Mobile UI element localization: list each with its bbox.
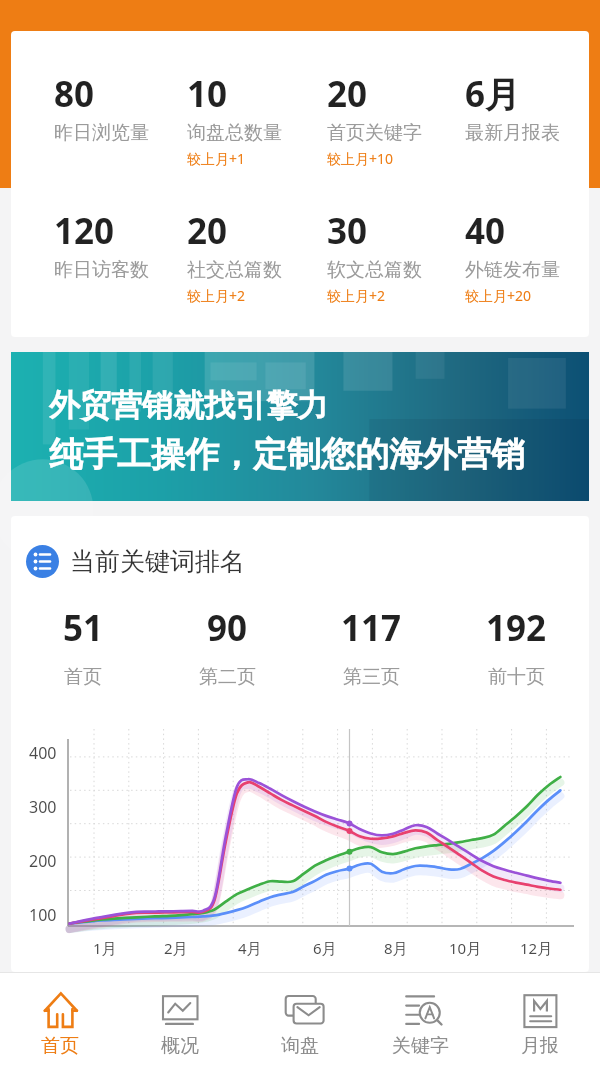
staticText: 关键字 [392, 1034, 449, 1058]
staticText: 40 [465, 207, 506, 255]
staticText: 400 [29, 742, 57, 764]
staticText: 200 [29, 850, 57, 872]
staticText: 昨日浏览量 [54, 121, 149, 145]
staticText: 第二页 [199, 665, 256, 689]
staticText: 6月 [313, 938, 337, 958]
staticText: 10 [187, 70, 228, 118]
staticText: 首页 [64, 665, 102, 689]
staticText: 当前关键词排名 [70, 546, 245, 577]
staticText: 较上月+20 [465, 286, 532, 305]
staticText: 较上月+2 [327, 286, 386, 305]
staticText: 月报 [521, 1034, 559, 1058]
staticText: 20 [327, 70, 368, 118]
staticText: 较上月+2 [187, 286, 246, 305]
staticText: 117 [341, 604, 402, 652]
staticText: 纯手工操作，定制您的海外营销 [49, 433, 525, 476]
staticText: 较上月+10 [327, 149, 394, 168]
button[interactable]: 询盘 [240, 973, 360, 1067]
staticText: 外贸营销就找引擎力 [49, 386, 328, 425]
staticText: 社交总篇数 [187, 258, 282, 282]
staticText: 30 [327, 207, 368, 255]
staticText: 120 [54, 207, 115, 255]
staticText: 192 [486, 604, 547, 652]
staticText: 12月 [520, 938, 553, 958]
staticText: 2月 [164, 938, 188, 958]
staticText: 100 [29, 904, 57, 926]
staticText: 51 [63, 604, 104, 652]
staticText: 20 [187, 207, 228, 255]
staticText: 首页关键字 [327, 121, 422, 145]
button[interactable]: 当前关键词排名 [26, 545, 245, 578]
staticText: 1月 [93, 938, 117, 958]
staticText: 询盘 [281, 1034, 319, 1058]
staticText: 昨日访客数 [54, 258, 149, 282]
staticText: 软文总篇数 [327, 258, 422, 282]
staticText: 询盘总数量 [187, 121, 282, 145]
staticText: 概况 [161, 1034, 199, 1058]
staticText: 第三页 [343, 665, 400, 689]
staticText: 8月 [384, 938, 408, 958]
staticText: 最新月报表 [465, 121, 560, 145]
staticText: 80 [54, 70, 95, 118]
button[interactable]: 关键字 [360, 973, 480, 1067]
staticText: 300 [29, 796, 57, 818]
staticText: 10月 [449, 938, 482, 958]
staticText: 较上月+1 [187, 149, 246, 168]
button[interactable]: 月报 [480, 973, 600, 1067]
staticText: 6月 [465, 70, 521, 118]
staticText: 90 [207, 604, 248, 652]
staticText: 4月 [238, 938, 262, 958]
staticText: 前十页 [488, 665, 545, 689]
button[interactable]: 首页 [0, 973, 120, 1067]
staticText: 首页 [41, 1034, 79, 1058]
button[interactable]: 概况 [120, 973, 240, 1067]
staticText: 外链发布量 [465, 258, 560, 282]
